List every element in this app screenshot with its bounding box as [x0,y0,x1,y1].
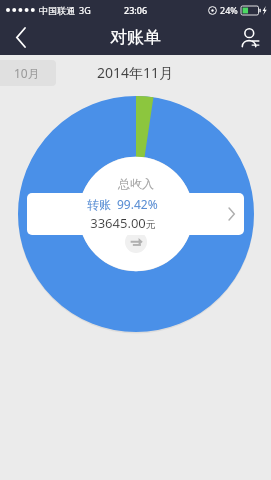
staticText: 33839.85元 [87,196,185,223]
staticText: 3G [79,4,91,16]
staticText: 2014年11月 [97,63,174,82]
staticText: 转账 [87,197,111,212]
staticText: 总收入 [118,176,154,191]
button[interactable]: Account [229,20,271,55]
button[interactable]: 2014年11月 [89,59,182,86]
staticText: 24% [220,4,238,16]
button[interactable]: Transfer [125,231,147,253]
staticText: 10月 [14,65,40,81]
staticText: 对账单 [110,27,161,48]
staticText: 99.42% [117,196,158,212]
staticText: 中国联通 [39,5,75,16]
button[interactable]: Back [0,20,42,55]
staticText: 23:06 [124,4,148,16]
button[interactable]: 转账 [27,193,244,235]
button[interactable]: 10月 [0,60,56,86]
staticText: 33645.00元 [90,214,156,232]
